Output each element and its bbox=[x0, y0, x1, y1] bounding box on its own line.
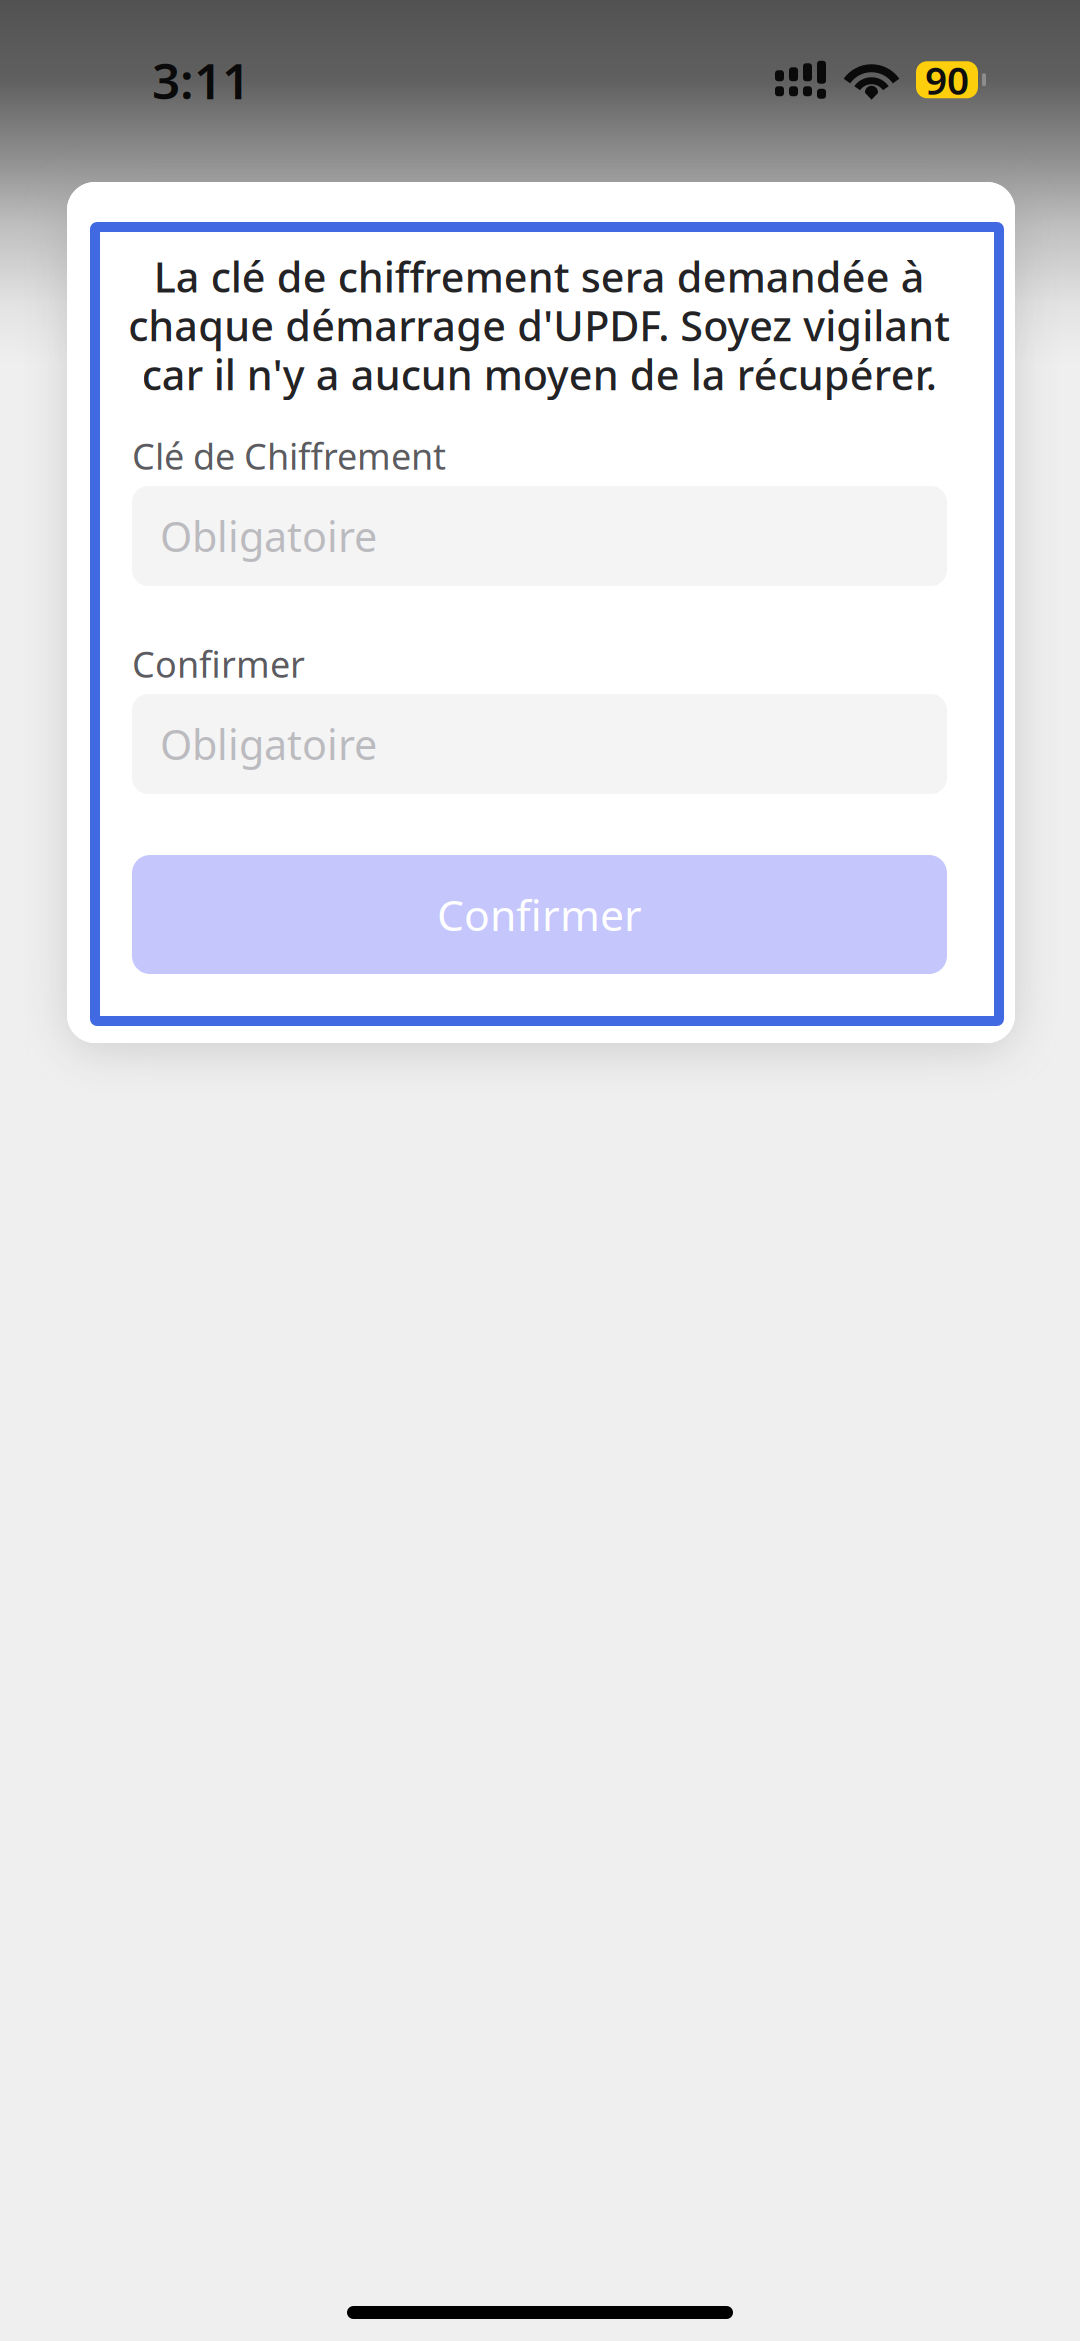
staticText: Obligatoire bbox=[160, 717, 377, 771]
staticText: La clé de chiffrement sera demandée à ch… bbox=[128, 249, 950, 402]
staticText: Confirmer bbox=[132, 640, 305, 688]
staticText: Confirmer bbox=[437, 886, 642, 943]
staticText: 3:11 bbox=[152, 47, 250, 113]
staticText: Clé de Chiffrement bbox=[132, 432, 446, 480]
button[interactable]: Confirmer bbox=[132, 855, 947, 974]
button[interactable]: Obligatoire bbox=[132, 486, 947, 586]
button[interactable]: Obligatoire bbox=[132, 694, 947, 794]
staticText: 90 bbox=[925, 54, 969, 105]
staticText: Obligatoire bbox=[160, 509, 377, 563]
